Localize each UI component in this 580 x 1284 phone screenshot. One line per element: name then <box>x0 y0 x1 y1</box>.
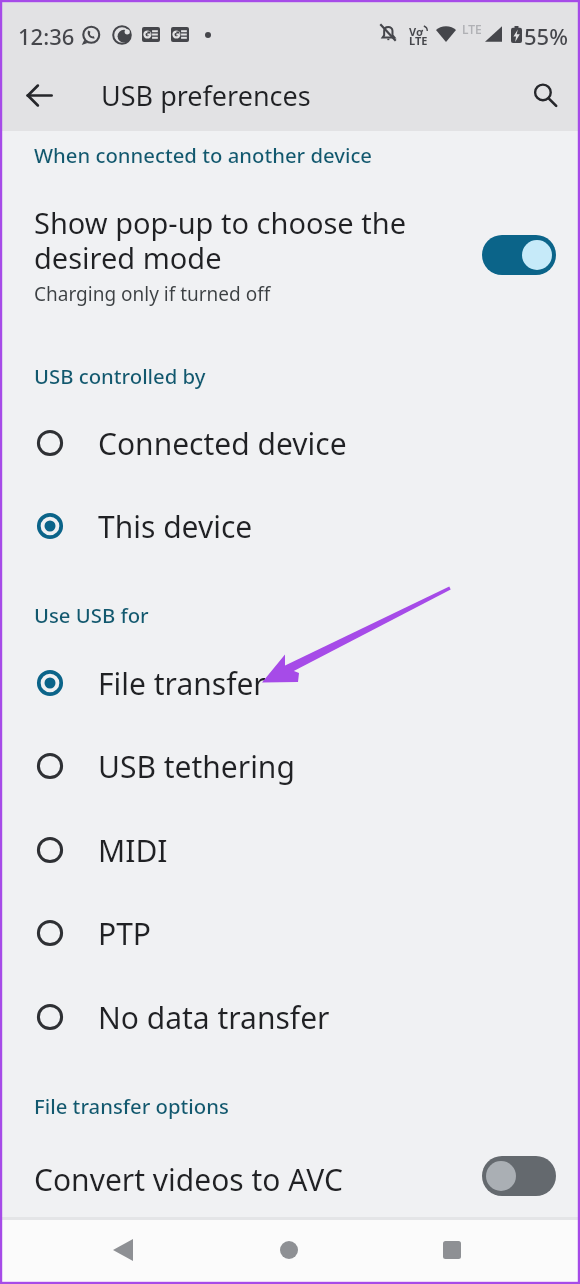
button[interactable]: USB tethering <box>0 725 580 807</box>
staticText: Show pop-up to choose the desired mode <box>34 203 407 278</box>
button[interactable]: This device <box>0 485 580 567</box>
staticText: Vo LTE <box>409 24 428 48</box>
staticText: USB tethering <box>98 746 295 787</box>
button[interactable]: Convert videos to AVC <box>0 1140 580 1212</box>
staticText: Convert videos to AVC <box>34 1159 343 1200</box>
staticText: 55% <box>524 21 568 51</box>
button[interactable]: Back <box>15 71 63 119</box>
staticText: Charging only if turned off <box>34 281 271 307</box>
staticText: USB preferences <box>101 77 311 114</box>
button[interactable]: MIDI <box>0 809 580 891</box>
button[interactable]: File transfer <box>0 642 580 724</box>
button[interactable]: Home <box>261 1222 317 1278</box>
button[interactable]: Show pop-up to choose the desired mode <box>0 185 580 320</box>
button[interactable]: Search <box>521 71 569 119</box>
staticText: Use USB for <box>34 601 149 629</box>
staticText: 12:36 <box>18 21 75 51</box>
staticText: LTE <box>462 21 482 37</box>
staticText: This device <box>98 506 253 547</box>
button[interactable]: Toggle off <box>482 1156 556 1196</box>
button[interactable]: Toggle on <box>482 235 556 275</box>
staticText: No data transfer <box>98 997 330 1038</box>
button[interactable]: Connected device <box>0 402 580 484</box>
button[interactable]: Back <box>95 1222 151 1278</box>
staticText: File transfer <box>98 663 266 704</box>
button[interactable]: No data transfer <box>0 976 580 1058</box>
staticText: File transfer options <box>34 1092 229 1120</box>
button[interactable]: Recent apps <box>424 1222 480 1278</box>
staticText: Connected device <box>98 423 347 464</box>
staticText: PTP <box>98 913 151 954</box>
staticText: MIDI <box>98 830 168 871</box>
button[interactable]: PTP <box>0 892 580 974</box>
staticText: USB controlled by <box>34 362 206 390</box>
staticText: When connected to another device <box>34 141 373 169</box>
